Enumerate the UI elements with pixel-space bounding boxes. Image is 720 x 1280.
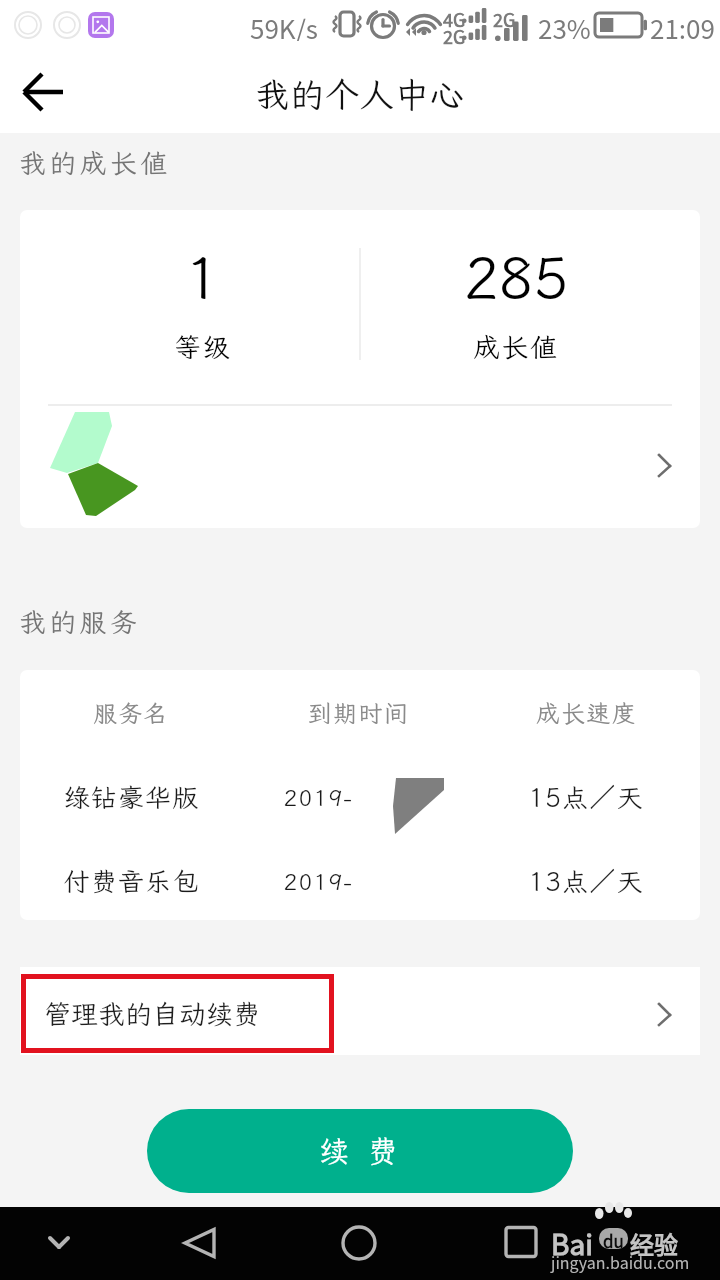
staticText: 管理我的自动续费 <box>44 996 260 1032</box>
staticText: 绿钻豪华版 <box>63 780 200 814</box>
button[interactable]: Back <box>164 1210 236 1276</box>
staticText: 续 费 <box>319 1131 402 1171</box>
staticText: 4G <box>443 6 466 32</box>
staticText: 2019- <box>283 782 353 812</box>
staticText: 13点／天 <box>528 864 644 898</box>
staticText: 2G <box>443 23 466 49</box>
button[interactable]: 续 费 <box>147 1109 573 1193</box>
staticText: 服务名 <box>93 697 169 729</box>
staticText: 等级 <box>174 329 231 365</box>
staticText: Bai <box>551 1223 593 1264</box>
staticText: 我的个人中心 <box>255 72 465 117</box>
button[interactable]: Back <box>6 68 58 116</box>
staticText: 23% <box>538 9 591 41</box>
button[interactable]: Home <box>323 1208 395 1278</box>
staticText: 我的服务 <box>19 604 141 640</box>
staticText: 经验 <box>630 1226 678 1261</box>
staticText: 15点／天 <box>528 780 644 814</box>
button[interactable]: 管理我的自动续费 <box>20 967 700 1055</box>
staticText: 59K/s <box>250 9 319 41</box>
button[interactable]: Recents <box>485 1205 557 1278</box>
staticText: 付费音乐包 <box>63 864 200 898</box>
staticText: 2G <box>493 6 516 32</box>
staticText: 我的成长值 <box>19 145 171 181</box>
staticText: 1 <box>185 238 220 314</box>
staticText: 成长速度 <box>536 697 637 729</box>
staticText: 成长值 <box>473 329 559 365</box>
staticText: 2019- <box>283 866 353 896</box>
staticText: jingyan.baidu.com <box>551 1250 690 1273</box>
staticText: 21:09 <box>650 9 715 41</box>
staticText: 到期时间 <box>308 697 409 729</box>
button[interactable]: Hide keyboard <box>24 1213 96 1273</box>
button[interactable]: 1 <box>20 210 700 528</box>
staticText: 285 <box>464 238 569 314</box>
staticText: du <box>603 1228 624 1249</box>
